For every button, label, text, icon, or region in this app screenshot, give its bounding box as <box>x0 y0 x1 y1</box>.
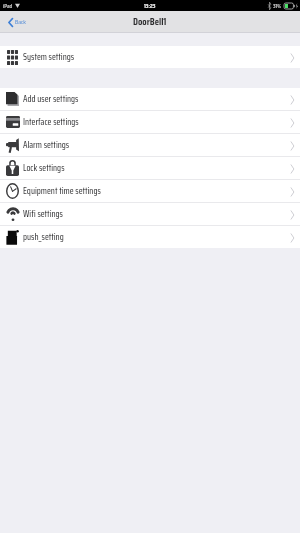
staticText: System settings <box>23 50 75 64</box>
staticText: 31% <box>273 1 282 10</box>
button[interactable]: Interface settings <box>0 111 300 133</box>
button[interactable]: Back <box>0 17 30 27</box>
staticText: 13:23 <box>144 1 156 10</box>
staticText: Alarm settings <box>23 138 70 152</box>
staticText: Equipment time settings <box>23 184 101 198</box>
staticText: push_setting <box>23 230 64 244</box>
button[interactable]: Lock settings <box>0 157 300 179</box>
staticText: Interface settings <box>23 115 79 129</box>
button[interactable]: Equipment time settings <box>0 180 300 202</box>
staticText: Back <box>15 17 26 27</box>
staticText: iPad <box>3 1 13 10</box>
staticText: Lock settings <box>23 161 65 175</box>
button[interactable]: Add user settings <box>0 88 300 110</box>
button[interactable]: push_setting <box>0 226 300 248</box>
staticText: Add user settings <box>23 92 79 106</box>
button[interactable]: Alarm settings <box>0 134 300 156</box>
button[interactable]: Wifi settings <box>0 203 300 225</box>
staticText: Wifi settings <box>23 207 63 221</box>
staticText: DoorBell1 <box>133 14 167 30</box>
button[interactable]: System settings <box>0 46 300 68</box>
